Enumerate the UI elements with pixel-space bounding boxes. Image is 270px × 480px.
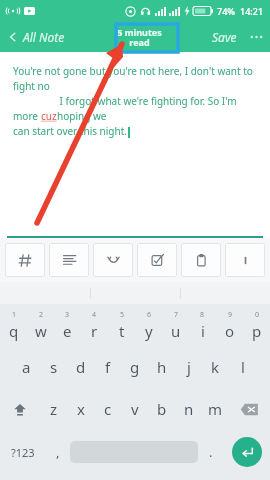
staticText: j bbox=[187, 357, 191, 377]
staticText: o bbox=[225, 321, 235, 341]
button[interactable]: Enter bbox=[232, 437, 262, 467]
button[interactable]: Shift bbox=[0, 388, 40, 430]
staticText: m bbox=[208, 399, 223, 419]
staticText: u bbox=[171, 321, 181, 341]
button[interactable]: n bbox=[175, 388, 202, 430]
staticText: e bbox=[63, 321, 72, 341]
staticText: I forgot what we're fighting for. So I'm… bbox=[57, 94, 260, 123]
button[interactable]: d bbox=[67, 346, 94, 388]
button[interactable]: b bbox=[148, 388, 175, 430]
button[interactable]: x bbox=[67, 388, 94, 430]
button[interactable]: More options bbox=[243, 27, 270, 47]
button[interactable]: s bbox=[40, 346, 67, 388]
staticText: h bbox=[157, 357, 167, 377]
button[interactable]: 3 bbox=[54, 304, 81, 346]
button[interactable]: z bbox=[40, 388, 67, 430]
button[interactable]: f bbox=[94, 346, 121, 388]
staticText: 1 bbox=[12, 310, 17, 320]
button[interactable]: 9 bbox=[216, 304, 243, 346]
staticText: r bbox=[91, 321, 98, 341]
button[interactable]: 1 bbox=[0, 304, 27, 346]
staticText: 5 bbox=[120, 310, 125, 320]
button[interactable]: ?123 bbox=[0, 430, 45, 474]
button[interactable]: v bbox=[121, 388, 148, 430]
button[interactable]: m bbox=[202, 388, 229, 430]
button[interactable]: List bbox=[49, 243, 89, 277]
staticText: , bbox=[56, 443, 60, 461]
staticText: You're not gone but you're not here, I d… bbox=[13, 64, 260, 93]
button[interactable]: 7 bbox=[162, 304, 189, 346]
staticText: All Note bbox=[23, 29, 65, 45]
staticText: y bbox=[145, 321, 153, 341]
button[interactable]: c bbox=[94, 388, 121, 430]
staticText: 6 bbox=[147, 310, 152, 320]
staticText: p bbox=[252, 321, 262, 341]
staticText: l bbox=[241, 357, 245, 377]
button[interactable]: Tag bbox=[5, 243, 45, 277]
button[interactable]: 5 minutes read bbox=[111, 23, 168, 51]
staticText: 5 minutes read bbox=[117, 26, 162, 48]
button[interactable]: Undo bbox=[93, 243, 133, 277]
button[interactable]: a bbox=[13, 346, 40, 388]
staticText: 8 bbox=[200, 310, 205, 320]
staticText: g bbox=[130, 357, 140, 377]
staticText: z bbox=[50, 399, 58, 419]
staticText: w bbox=[35, 321, 47, 341]
button[interactable]: g bbox=[121, 346, 148, 388]
staticText: 3 bbox=[65, 310, 70, 320]
button[interactable]: Backspace bbox=[229, 388, 270, 430]
button[interactable]: 8 bbox=[189, 304, 216, 346]
button[interactable]: 6 bbox=[135, 304, 162, 346]
button[interactable]: 0 bbox=[243, 304, 270, 346]
staticText: 9 bbox=[228, 310, 233, 320]
button[interactable]: h bbox=[148, 346, 175, 388]
staticText: b bbox=[157, 399, 167, 419]
button[interactable]: 2 bbox=[27, 304, 54, 346]
button[interactable]: Period bbox=[198, 430, 223, 474]
staticText: 0 bbox=[255, 310, 260, 320]
staticText: more bbox=[13, 109, 41, 123]
button[interactable]: j bbox=[175, 346, 202, 388]
button[interactable]: More bbox=[225, 243, 265, 277]
button[interactable]: Comma bbox=[45, 430, 70, 474]
staticText: can start over this night. bbox=[13, 124, 127, 138]
staticText: 2 bbox=[39, 310, 44, 320]
staticText: x bbox=[77, 399, 85, 419]
staticText: t bbox=[119, 321, 125, 341]
staticText: f bbox=[105, 357, 111, 377]
staticText: 74% bbox=[217, 5, 235, 17]
staticText: k bbox=[211, 357, 220, 377]
button[interactable]: l bbox=[229, 346, 256, 388]
button[interactable]: 4 bbox=[81, 304, 108, 346]
button[interactable]: 5 bbox=[108, 304, 135, 346]
staticText: c bbox=[104, 399, 112, 419]
staticText: i bbox=[201, 321, 205, 341]
staticText: 4 bbox=[92, 310, 97, 320]
staticText: a bbox=[22, 357, 31, 377]
staticText: 14:21 bbox=[240, 5, 264, 17]
button[interactable]: Checklist bbox=[137, 243, 177, 277]
staticText: cuz bbox=[41, 109, 57, 123]
staticText: d bbox=[76, 357, 86, 377]
button[interactable]: k bbox=[202, 346, 229, 388]
staticText: s bbox=[50, 357, 58, 377]
button[interactable]: All Note bbox=[0, 25, 73, 49]
staticText: q bbox=[9, 321, 19, 341]
staticText: ?123 bbox=[11, 445, 35, 460]
staticText: n bbox=[184, 399, 194, 419]
button[interactable]: Clipboard bbox=[181, 243, 221, 277]
staticText: v bbox=[131, 399, 139, 419]
staticText: 7 bbox=[174, 310, 179, 320]
staticText: . bbox=[209, 443, 213, 461]
button[interactable]: Save bbox=[206, 25, 243, 49]
staticText: Save bbox=[212, 29, 237, 45]
